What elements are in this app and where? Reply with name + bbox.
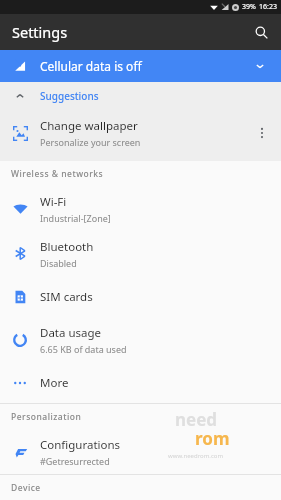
staticText: SIM cards xyxy=(40,289,93,305)
button[interactable]: Bluetooth xyxy=(0,231,281,276)
staticText: need xyxy=(175,408,218,431)
staticText: Device xyxy=(11,482,41,494)
staticText: Wi-Fi xyxy=(40,194,67,210)
other: Collapse suggestions xyxy=(0,91,40,101)
staticText: Settings xyxy=(12,22,68,42)
button[interactable]: Search xyxy=(246,17,276,47)
staticText: Cellular data is off xyxy=(40,58,142,74)
staticText: www.needrom.com xyxy=(168,452,224,460)
staticText: 39% xyxy=(242,2,256,12)
staticText: Change wallpaper xyxy=(40,118,138,134)
staticText: Bluetooth xyxy=(40,239,94,255)
staticText: Suggestions xyxy=(40,89,99,103)
button[interactable]: Expand cellular data xyxy=(249,55,271,77)
staticText: Wireless & networks xyxy=(11,168,104,180)
staticText: #Getresurrected xyxy=(40,455,110,467)
staticText: Data usage xyxy=(40,325,102,341)
staticText: Configurations xyxy=(40,437,121,453)
staticText: 6.65 KB of data used xyxy=(40,343,127,355)
button[interactable]: More options xyxy=(250,121,274,145)
button[interactable]: More xyxy=(0,362,281,403)
button[interactable]: Wi-Fi xyxy=(0,186,281,231)
button[interactable]: Collapse suggestions xyxy=(0,82,281,109)
staticText: Disabled xyxy=(40,257,77,269)
staticText: 16:23 xyxy=(259,2,277,12)
button[interactable]: Cellular data is off xyxy=(0,50,281,82)
button[interactable]: SIM cards xyxy=(0,276,281,317)
staticText: Personalize your screen xyxy=(40,136,141,148)
staticText: Industrial-[Zone] xyxy=(40,212,111,224)
staticText: More xyxy=(40,375,69,391)
button[interactable]: Configurations xyxy=(0,429,281,474)
button[interactable]: Data usage xyxy=(0,317,281,362)
staticText: rom xyxy=(195,427,230,450)
button[interactable]: Change wallpaper xyxy=(0,109,281,157)
staticText: Personalization xyxy=(11,411,82,423)
